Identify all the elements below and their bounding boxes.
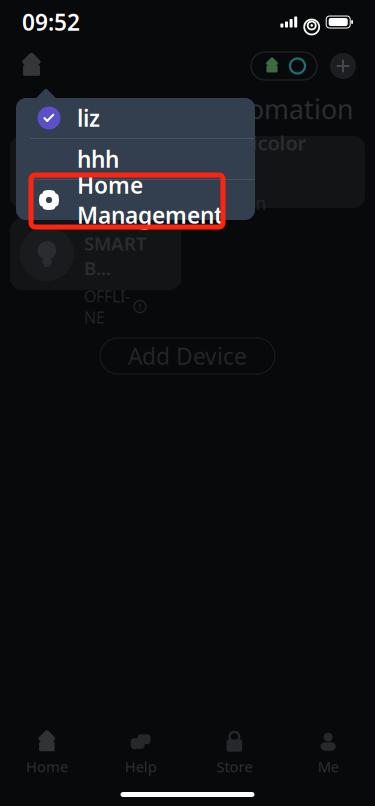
button[interactable]: Home Management — [16, 179, 255, 220]
button[interactable]: liz — [16, 98, 255, 138]
button[interactable]: Add — [325, 48, 361, 84]
staticText: 09:52 — [22, 7, 80, 37]
button[interactable]: hhh — [16, 138, 255, 179]
staticText: Me — [318, 757, 339, 776]
button[interactable]: Add Device — [100, 338, 275, 374]
button[interactable]: Help — [94, 728, 188, 780]
button[interactable]: Store — [187, 728, 281, 780]
staticText: OFFLINE — [84, 285, 130, 328]
staticText: Automation — [205, 91, 353, 127]
staticText: Home Management — [77, 170, 223, 230]
button[interactable]: Home — [0, 728, 94, 780]
staticText: Add Device — [128, 341, 247, 371]
staticText: SMART B... — [84, 231, 147, 280]
button[interactable]: Voice assistants — [251, 52, 317, 80]
staticText: bulb — [205, 158, 250, 185]
staticText: Kitchen — [205, 192, 266, 215]
button[interactable]: Me — [281, 728, 375, 780]
staticText: LUMIMAN — [84, 180, 138, 230]
staticText: Home — [26, 757, 68, 776]
staticText: Help — [125, 757, 157, 776]
staticText: liz — [77, 103, 100, 133]
staticText: Store — [216, 757, 252, 776]
staticText: Multicolor — [205, 129, 306, 156]
button[interactable]: Home — [14, 48, 49, 83]
staticText: hhh — [77, 144, 119, 174]
